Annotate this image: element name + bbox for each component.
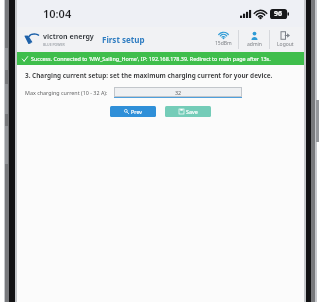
- staticText: Success. Connected to 'MW_Sailing_Home',…: [31, 55, 271, 62]
- staticText: victron energy: [43, 32, 94, 42]
- staticText: 96: [274, 9, 283, 19]
- staticText: Prev: [131, 108, 143, 115]
- staticText: Save: [186, 108, 198, 115]
- staticText: First setup: [102, 34, 145, 45]
- staticText: 32: [175, 89, 182, 96]
- button[interactable]: WiFi signal strength: [208, 27, 238, 52]
- staticText: Max charging current (10 - 32 A):: [25, 89, 108, 96]
- staticText: Logout: [277, 41, 294, 48]
- button[interactable]: 32: [114, 87, 242, 97]
- button[interactable]: Save: [165, 106, 211, 117]
- staticText: 10:04: [43, 6, 72, 21]
- button[interactable]: Account admin: [239, 27, 269, 52]
- button[interactable]: Logout: [270, 27, 300, 52]
- staticText: admin: [247, 41, 262, 48]
- staticText: BLUE POWER: [43, 42, 65, 47]
- staticText: 3. Charging current setup: set the maxim…: [25, 71, 273, 80]
- button[interactable]: Prev: [110, 106, 156, 117]
- staticText: 15dBm: [215, 40, 232, 47]
